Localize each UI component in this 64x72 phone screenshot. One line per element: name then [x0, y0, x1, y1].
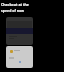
button[interactable]	[6, 17, 33, 45]
staticText: speed of now	[1, 8, 25, 13]
staticText: Checkout at the	[1, 2, 29, 7]
button[interactable]	[6, 46, 33, 68]
